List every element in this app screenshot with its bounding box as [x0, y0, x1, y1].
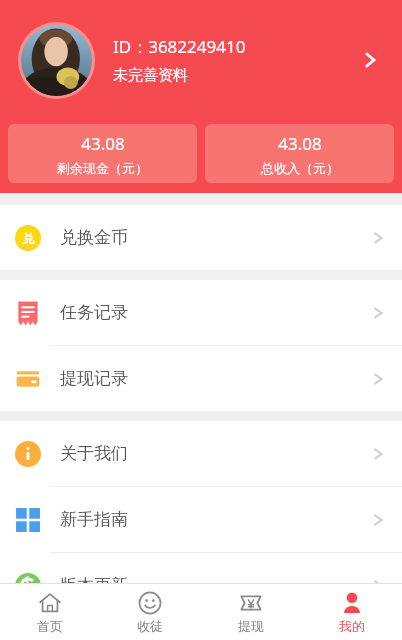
- staticText: 剩余现金（元）: [57, 160, 148, 176]
- button[interactable]: 关于我们: [0, 421, 402, 486]
- button[interactable]: 任务记录: [0, 280, 402, 345]
- staticText: 提现记录: [60, 368, 128, 389]
- staticText: 未完善资料: [113, 66, 188, 85]
- staticText: 任务记录: [60, 302, 128, 323]
- staticText: 我的: [339, 618, 365, 634]
- staticText: 43.08: [278, 132, 322, 155]
- staticText: ID：3682249410: [113, 35, 246, 58]
- staticText: 关于我们: [60, 443, 128, 464]
- staticText: 兑换金币: [60, 227, 128, 248]
- button[interactable]: 我的: [301, 584, 402, 640]
- staticText: 提现: [238, 618, 264, 634]
- staticText: 版本更新: [60, 575, 128, 596]
- staticText: 收徒: [137, 618, 163, 634]
- staticText: 43.08: [81, 132, 125, 155]
- staticText: 首页: [37, 618, 63, 634]
- button[interactable]: 收徒: [100, 584, 200, 640]
- button[interactable]: 提现记录: [0, 346, 402, 411]
- button[interactable]: 提现: [200, 584, 301, 640]
- button[interactable]: 43.08: [205, 124, 394, 183]
- staticText: 新手指南: [60, 509, 128, 530]
- button[interactable]: 版本更新: [0, 553, 402, 618]
- button[interactable]: 兑: [0, 205, 402, 270]
- button[interactable]: ID：3682249410: [0, 0, 402, 120]
- button[interactable]: Profile details: [356, 46, 384, 74]
- button[interactable]: 43.08: [8, 124, 197, 183]
- staticText: 总收入（元）: [261, 160, 339, 176]
- staticText: 兑: [22, 231, 34, 246]
- button[interactable]: 首页: [0, 584, 100, 640]
- button[interactable]: 新手指南: [0, 487, 402, 552]
